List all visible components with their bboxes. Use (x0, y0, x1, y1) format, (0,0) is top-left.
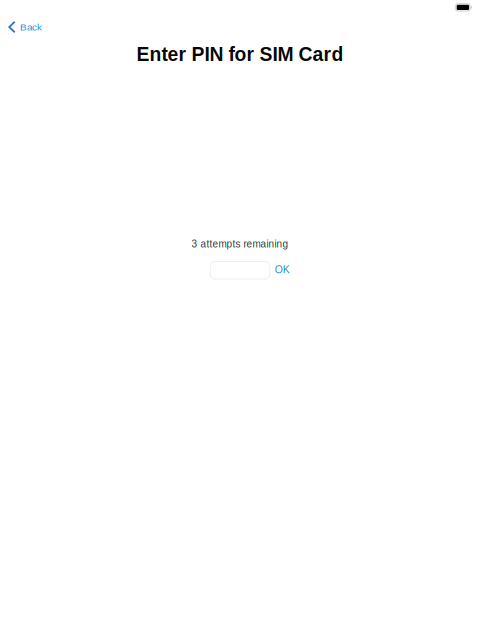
staticText: Back (20, 21, 42, 32)
staticText: Enter PIN for SIM Card (136, 43, 343, 65)
button[interactable]: Back (0, 16, 52, 37)
button[interactable]: OK (272, 260, 293, 279)
staticText: OK (275, 264, 290, 275)
staticText: 3 attempts remaining (191, 238, 288, 249)
button[interactable]: PIN (210, 261, 270, 279)
